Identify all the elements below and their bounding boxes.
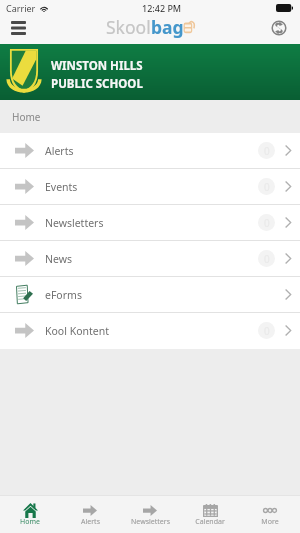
button[interactable]: Newsletters [120,496,180,533]
staticText: eForms [45,288,82,302]
button[interactable]: Menu [0,18,37,38]
button[interactable]: Alerts [0,133,300,168]
staticText: 0 [264,216,270,230]
staticText: bag [151,15,184,39]
staticText: 0 [264,324,270,338]
staticText: 0 [264,252,270,266]
staticText: Calendar [195,517,225,527]
staticText: Skool [106,15,151,39]
button[interactable]: News [0,241,300,276]
staticText: WINSTON HILLS [51,58,143,74]
staticText: PUBLIC SCHOOL [51,76,143,92]
button[interactable]: Kool Kontent [0,313,300,348]
button[interactable]: Home [0,496,60,533]
button[interactable]: More [240,496,300,533]
button[interactable]: Calendar [180,496,240,533]
staticText: Alerts [81,517,100,527]
button[interactable]: Events [0,169,300,204]
staticText: 0 [264,144,270,158]
staticText: News [45,252,72,266]
staticText: Home [20,517,40,527]
staticText: 0 [264,180,270,194]
button[interactable]: Refresh [258,17,300,39]
button[interactable]: Newsletters [0,205,300,240]
staticText: Events [45,180,78,194]
staticText: Carrier [6,2,36,14]
button[interactable]: eForms [0,277,300,312]
staticText: Home [12,110,41,124]
staticText: Newsletters [131,517,170,527]
staticText: Newsletters [45,216,104,230]
button[interactable]: Alerts [60,496,120,533]
staticText: Kool Kontent [45,324,109,338]
staticText: 12:42 PM [142,2,182,14]
staticText: Alerts [45,144,74,158]
staticText: More [261,517,279,527]
